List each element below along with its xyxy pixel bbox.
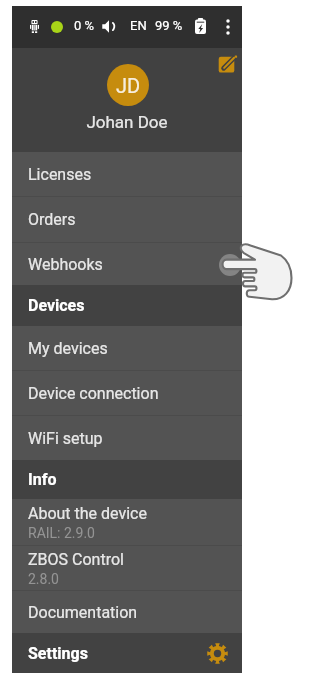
staticText: 99 % [155,18,183,33]
button[interactable]: Device connection [12,371,242,415]
staticText: Settings [28,644,88,663]
button[interactable]: Documentation [12,591,242,633]
button[interactable]: Licenses [12,152,242,196]
button[interactable]: Settings [12,633,242,673]
staticText: My devices [28,339,108,358]
button[interactable]: Webhooks [12,243,242,285]
staticText: Info [28,470,57,489]
staticText: Documentation [28,603,138,622]
staticText: Johan Doe [12,112,242,132]
button[interactable]: My devices [12,326,242,370]
button[interactable]: Orders [12,197,242,242]
staticText: Licenses [28,165,92,184]
button[interactable]: WiFi setup [12,416,242,460]
staticText: RAIL: 2.9.0 [28,525,95,541]
button[interactable]: Edit profile [218,55,240,77]
staticText: ZBOS Control [28,550,124,569]
staticText: Device connection [28,384,159,403]
button[interactable]: ZBOS Control [12,546,242,590]
staticText: EN [130,18,147,33]
staticText: Webhooks [28,255,103,274]
staticText: WiFi setup [28,429,103,448]
button[interactable]: About the device [12,499,242,545]
staticText: Devices [28,296,85,315]
staticText: JD [116,74,141,97]
staticText: About the device [28,504,147,523]
staticText: 2.8.0 [28,571,59,587]
button[interactable]: More options [221,18,235,36]
staticText: 0 % [74,18,95,33]
staticText: Orders [28,210,76,229]
